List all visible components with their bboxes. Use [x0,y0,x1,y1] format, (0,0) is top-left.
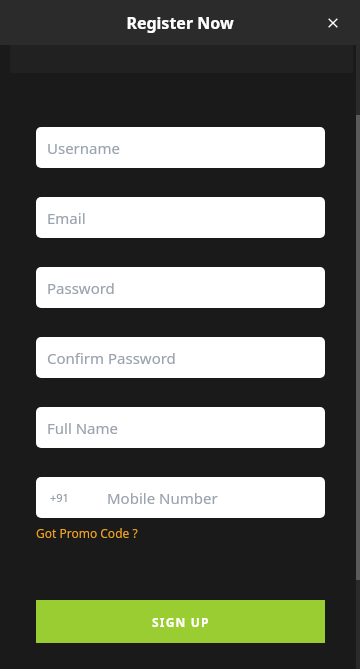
button[interactable]: Close [314,4,352,42]
staticText: Confirm Password [47,348,176,368]
button[interactable]: Confirm Password [36,337,325,378]
staticText: Mobile Number [107,488,218,508]
button[interactable]: Got Promo Code ? [36,525,138,541]
button[interactable]: SIGN UP [36,600,325,643]
button[interactable]: +91 [36,477,325,518]
staticText: Password [47,278,115,298]
staticText: SIGN UP [152,614,210,630]
staticText: Got Promo Code ? [36,525,138,541]
staticText: Email [47,208,86,228]
button[interactable]: Password [36,267,325,308]
staticText: +91 [50,490,69,505]
button[interactable]: Full Name [36,407,325,448]
staticText: Full Name [47,418,118,438]
button[interactable]: Username [36,127,325,168]
button[interactable]: Email [36,197,325,238]
staticText: Username [47,138,120,158]
staticText: Register Now [126,12,234,34]
